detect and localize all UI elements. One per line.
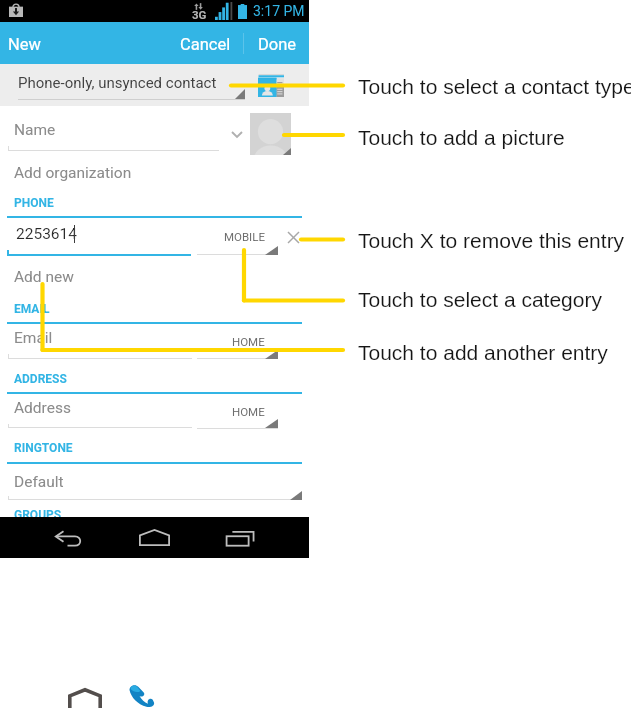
staticText: RINGTONE bbox=[14, 441, 73, 455]
staticText: New bbox=[8, 35, 41, 54]
staticText: Done bbox=[258, 35, 297, 54]
staticText: Address bbox=[14, 399, 71, 417]
button[interactable]: 2253614 bbox=[8, 220, 192, 250]
staticText: ADDRESS bbox=[14, 372, 67, 386]
button[interactable]: Phone-only, unsynced contact bbox=[0, 64, 309, 106]
button[interactable]: Add organization bbox=[8, 159, 138, 187]
staticText: Add organization bbox=[14, 164, 132, 182]
staticText: 3:17 PM bbox=[253, 3, 305, 19]
staticText: Email bbox=[14, 329, 53, 347]
staticText: Touch X to remove this entry bbox=[358, 229, 625, 252]
button[interactable]: Expand name fields bbox=[231, 131, 243, 138]
button[interactable]: Select a category bbox=[197, 398, 278, 428]
staticText: HOME bbox=[232, 335, 265, 348]
staticText: 3G bbox=[192, 8, 207, 21]
button[interactable]: Select a category bbox=[197, 223, 278, 253]
button[interactable]: Back bbox=[41, 517, 103, 558]
button[interactable]: Done bbox=[252, 28, 303, 61]
staticText: MOBILE bbox=[224, 230, 265, 243]
staticText: GROUPS bbox=[14, 508, 62, 522]
staticText: Touch to add another entry bbox=[358, 341, 608, 364]
staticText: HOME bbox=[232, 405, 265, 418]
staticText: Touch to select a contact type bbox=[358, 75, 631, 98]
button[interactable]: New bbox=[2, 28, 47, 61]
button[interactable]: Email bbox=[8, 324, 192, 354]
staticText: Default bbox=[14, 473, 64, 491]
staticText: Cancel bbox=[180, 35, 231, 54]
staticText: Add new bbox=[14, 268, 74, 286]
staticText: Touch to select a category bbox=[358, 288, 602, 311]
button[interactable]: Recent apps bbox=[211, 517, 273, 558]
button[interactable]: Default bbox=[8, 468, 301, 498]
staticText: Touch to add a picture bbox=[358, 126, 565, 149]
staticText: PHONE bbox=[14, 196, 54, 210]
button[interactable]: Address bbox=[8, 394, 192, 424]
button[interactable]: Remove this entry bbox=[288, 232, 299, 243]
staticText: 2253614 bbox=[16, 225, 77, 243]
button[interactable]: Add a picture bbox=[250, 113, 291, 155]
staticText: Phone-only, unsynced contact bbox=[18, 74, 217, 92]
button[interactable]: Add new bbox=[8, 263, 80, 291]
staticText: Name bbox=[14, 121, 56, 139]
button[interactable]: Select a category bbox=[197, 328, 278, 358]
button[interactable]: Home bbox=[124, 517, 186, 558]
button[interactable]: Cancel bbox=[174, 28, 237, 61]
staticText: EMAIL bbox=[14, 302, 50, 316]
